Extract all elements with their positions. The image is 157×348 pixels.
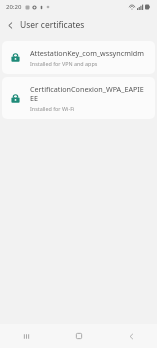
staticText: 20:20	[6, 3, 22, 11]
staticText: AttestationKey_com_wssyncmldm	[30, 48, 144, 58]
button[interactable]: Recent apps	[0, 324, 53, 348]
staticText: Installed for Wi-Fi	[30, 105, 75, 112]
button[interactable]: CertificationConexion_WPA_EAPIEEE 8021X_…	[2, 77, 155, 119]
button[interactable]: Back	[105, 324, 157, 348]
staticText: User certificates	[20, 19, 85, 31]
staticText: CertificationConexion_WPA_EAPIEEE 8021X_…	[30, 84, 147, 103]
button[interactable]: AttestationKey_com_wssyncmldm	[2, 41, 155, 74]
button[interactable]: Home	[53, 324, 105, 348]
staticText: Installed for VPN and apps	[30, 60, 98, 67]
button[interactable]: Navigate up	[0, 15, 20, 35]
